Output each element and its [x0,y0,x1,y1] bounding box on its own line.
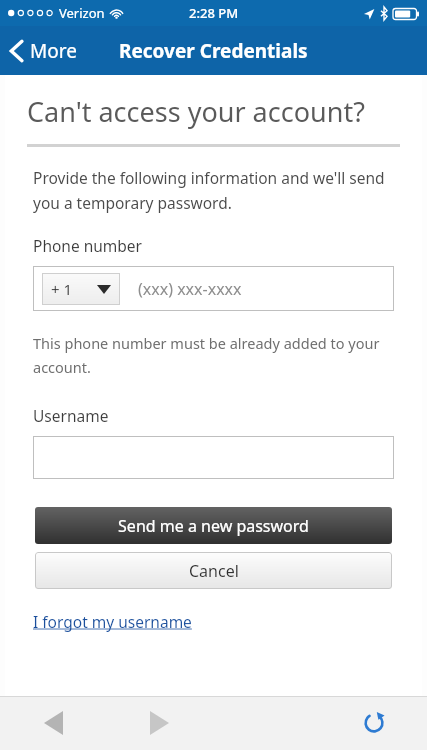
staticText: Send me a new password [118,515,309,537]
staticText: Cancel [189,560,239,582]
button[interactable]: I forgot my username [33,611,192,632]
staticText: + 1 [51,279,73,299]
button[interactable]: Forward [106,696,213,750]
staticText: Recover Credentials [119,38,308,64]
staticText: This phone number must be already added … [33,333,382,377]
button[interactable]: Back [0,696,106,750]
staticText: Verizon [59,4,105,22]
staticText: Provide the following information and we… [33,167,390,213]
button[interactable]: + 1 [33,266,394,311]
button[interactable]: Refresh [320,696,427,750]
button[interactable]: + 1 [42,273,120,305]
button[interactable]: More [0,32,89,70]
staticText: Phone number [33,235,143,256]
staticText: I forgot my username [33,611,192,632]
staticText: Username [33,405,109,426]
button[interactable]: Send me a new password [35,507,392,544]
staticText: Can't access your account? [27,93,365,130]
staticText: More [30,38,77,64]
staticText: (xxx) xxx-xxxx [138,278,242,300]
button[interactable] [33,436,394,479]
staticText: 2:28 PM [189,4,239,22]
button[interactable]: Cancel [35,552,392,589]
